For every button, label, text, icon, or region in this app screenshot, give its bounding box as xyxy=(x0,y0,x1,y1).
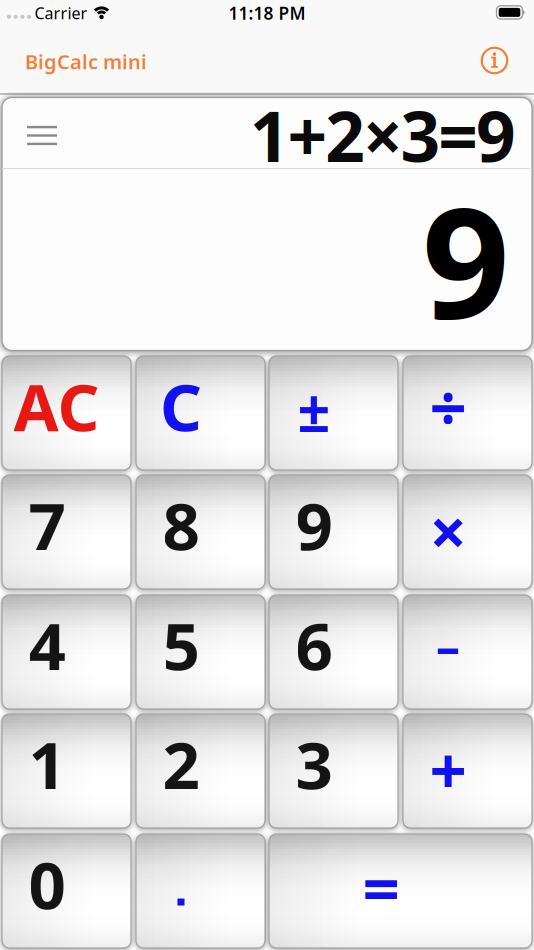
staticText: + xyxy=(429,725,466,812)
staticText: 7 xyxy=(28,482,65,568)
staticText: ÷ xyxy=(429,363,466,449)
staticText: × xyxy=(429,487,466,574)
staticText: 8 xyxy=(162,482,199,568)
staticText: 1+2×3=9 xyxy=(250,89,516,181)
staticText: 3 xyxy=(295,721,332,807)
staticText: 4 xyxy=(28,602,65,688)
staticText: 2 xyxy=(162,721,199,807)
staticText: Carrier xyxy=(34,2,87,24)
staticText: 1 xyxy=(28,721,65,807)
staticText: – xyxy=(436,614,460,677)
staticText: 5 xyxy=(162,602,199,688)
staticText: C xyxy=(160,363,202,449)
staticText: = xyxy=(362,844,399,930)
staticText: 9 xyxy=(422,158,510,361)
staticText: ± xyxy=(297,372,330,448)
staticText: 11:18 PM xyxy=(228,1,305,24)
staticText: AC xyxy=(13,363,99,449)
staticText: 6 xyxy=(295,602,332,688)
staticText: 0 xyxy=(28,841,65,927)
staticText: BigCalc mini xyxy=(25,48,147,75)
staticText: 9 xyxy=(295,482,332,568)
